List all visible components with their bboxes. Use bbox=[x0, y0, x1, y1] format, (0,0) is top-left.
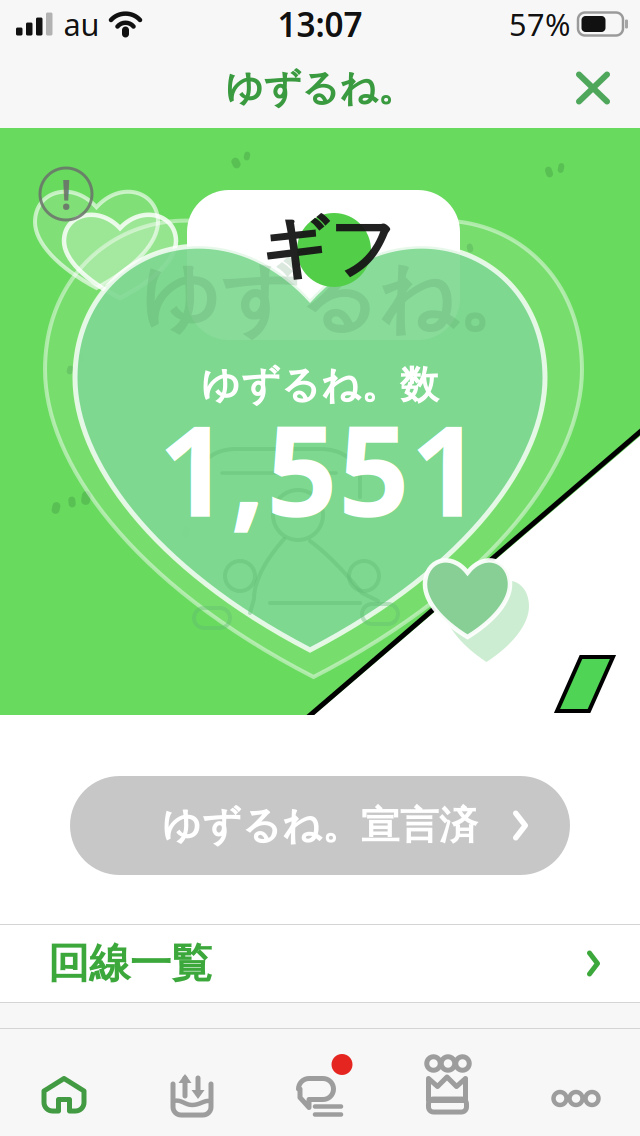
staticText: ゆずるね。数 bbox=[201, 361, 439, 409]
button[interactable]: 回線一覧 bbox=[0, 924, 640, 1003]
staticText: 13:07 bbox=[277, 2, 362, 46]
button[interactable]: Close bbox=[560, 55, 626, 120]
staticText: au bbox=[63, 4, 99, 44]
staticText: ! bbox=[60, 167, 71, 221]
staticText: ゆずるね。 bbox=[141, 250, 534, 345]
button[interactable]: ゆずるね。宣言済 bbox=[70, 776, 570, 875]
button[interactable]: Data bbox=[128, 1029, 256, 1136]
button[interactable]: Messages bbox=[256, 1029, 384, 1136]
staticText: ゆずるね。 bbox=[225, 65, 414, 111]
staticText: ギフ bbox=[261, 207, 397, 289]
staticText: 回線一覧 bbox=[48, 938, 212, 989]
staticText: ゆずるね。宣言済 bbox=[162, 802, 478, 849]
button[interactable]: Rewards bbox=[384, 1029, 512, 1136]
staticText: 57% bbox=[509, 4, 570, 44]
button[interactable]: More bbox=[512, 1029, 640, 1136]
button[interactable]: Home bbox=[0, 1029, 128, 1136]
staticText: 1,551 bbox=[158, 385, 482, 551]
